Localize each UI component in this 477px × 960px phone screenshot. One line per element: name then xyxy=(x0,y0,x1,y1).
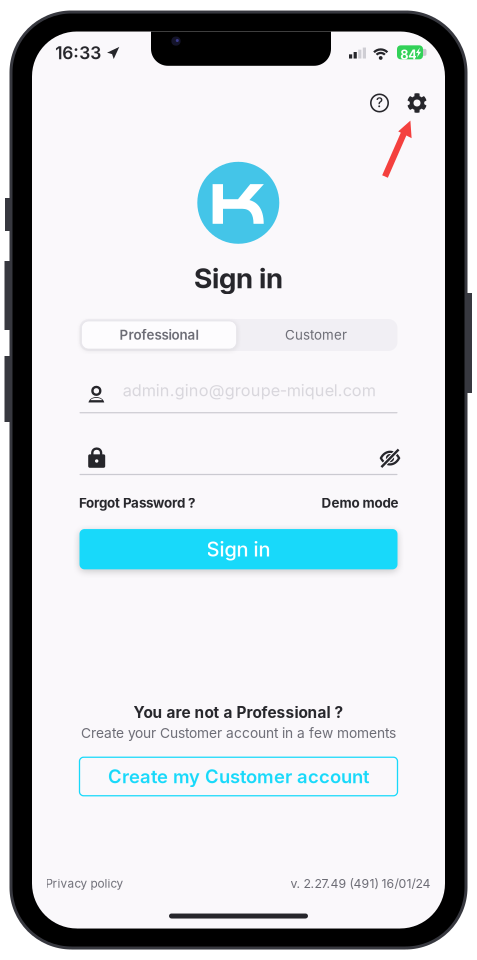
button[interactable]: Professional xyxy=(81,321,236,349)
button[interactable]: Customer xyxy=(236,321,395,349)
button[interactable]: Settings xyxy=(400,86,434,120)
staticText: ? xyxy=(376,94,383,110)
staticText: admin.gino@groupe-miquel.com xyxy=(123,380,376,400)
staticText: Professional xyxy=(119,327,198,343)
staticText: 84 xyxy=(400,47,417,62)
button[interactable]: Forgot Password ? xyxy=(79,495,195,511)
staticText: Forgot Password ? xyxy=(79,495,195,511)
staticText: You are not a Professional ? xyxy=(133,703,343,722)
staticText: 16:33 xyxy=(55,42,101,63)
staticText: Create your Customer account in a few mo… xyxy=(81,725,396,741)
staticText: Sign in xyxy=(194,261,283,295)
button[interactable]: Show password xyxy=(376,445,404,471)
staticText: Privacy policy xyxy=(45,876,123,891)
button[interactable]: Create my Customer account xyxy=(79,757,397,796)
staticText: v. 2.27.49 (491) 16/01/24 xyxy=(290,876,430,891)
staticText: Sign in xyxy=(206,537,270,561)
staticText: Customer xyxy=(285,327,347,343)
button[interactable]: Privacy policy xyxy=(45,876,123,891)
button[interactable]: Help xyxy=(362,86,396,120)
staticText: Create my Customer account xyxy=(108,765,369,788)
button[interactable]: Demo mode xyxy=(321,495,398,511)
button[interactable]: Sign in xyxy=(79,529,397,569)
staticText: Demo mode xyxy=(321,495,398,511)
